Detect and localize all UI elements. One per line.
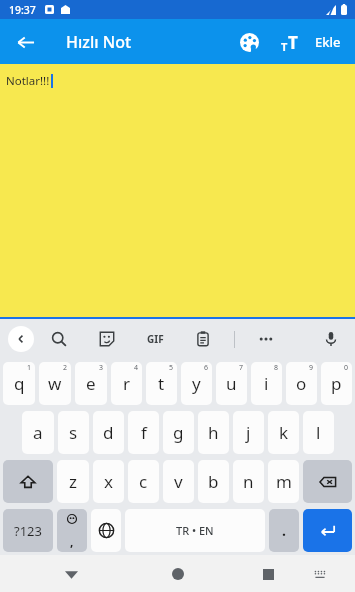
staticText: j — [246, 421, 251, 444]
button[interactable]: Home — [163, 559, 193, 589]
staticText: T — [281, 39, 288, 54]
staticText: T — [288, 31, 298, 54]
button[interactable]: z — [57, 460, 89, 503]
button[interactable]: Color palette — [232, 25, 266, 59]
staticText: 6 — [204, 363, 209, 373]
button[interactable]: y — [181, 362, 212, 405]
staticText: o — [296, 372, 307, 395]
button[interactable]: b — [198, 460, 229, 503]
button[interactable]: p — [321, 362, 352, 405]
button[interactable]: w — [39, 362, 71, 405]
button[interactable]: GIF — [142, 326, 168, 352]
staticText: . — [282, 521, 286, 540]
staticText: , — [70, 533, 74, 549]
button[interactable]: s — [58, 411, 89, 454]
staticText: n — [243, 470, 254, 493]
button[interactable]: f — [128, 411, 159, 454]
staticText: q — [14, 372, 25, 395]
button[interactable]: q — [3, 362, 35, 405]
staticText: 5 — [169, 363, 174, 373]
button[interactable]: Search — [46, 326, 72, 352]
button[interactable]: v — [163, 460, 194, 503]
button[interactable]: Clipboard — [190, 326, 216, 352]
staticText: p — [331, 372, 342, 395]
staticText: t — [158, 372, 165, 395]
staticText: 0 — [344, 363, 349, 373]
staticText: w — [48, 372, 62, 395]
button[interactable]: x — [93, 460, 124, 503]
staticText: z — [69, 470, 77, 493]
button[interactable]: h — [198, 411, 229, 454]
staticText: GIF — [147, 332, 164, 346]
button[interactable]: j — [233, 411, 264, 454]
button[interactable]: Expand toolbar — [8, 326, 34, 352]
staticText: i — [264, 372, 269, 395]
staticText: e — [86, 372, 96, 395]
button[interactable]: k — [268, 411, 299, 454]
button[interactable]: More options — [253, 326, 279, 352]
button[interactable]: Enter — [303, 509, 352, 552]
button[interactable]: Voice input — [317, 325, 345, 353]
staticText: g — [173, 421, 184, 444]
staticText: Hızlı Not — [66, 31, 132, 53]
staticText: a — [33, 421, 43, 444]
button[interactable]: e — [75, 362, 107, 405]
button[interactable]: Emoji and comma — [57, 509, 87, 552]
staticText: 19:37 — [9, 3, 36, 17]
button[interactable]: Change language — [91, 509, 121, 552]
button[interactable]: i — [251, 362, 282, 405]
staticText: Ekle — [315, 33, 341, 51]
staticText: TR • EN — [176, 523, 214, 538]
staticText: c — [139, 470, 148, 493]
staticText: m — [276, 470, 292, 493]
button[interactable]: m — [268, 460, 299, 503]
staticText: f — [141, 421, 147, 444]
staticText: u — [226, 372, 237, 395]
staticText: 1 — [27, 363, 32, 373]
staticText: 8 — [274, 363, 279, 373]
staticText: d — [103, 421, 114, 444]
staticText: l — [316, 421, 321, 444]
button[interactable]: Recent apps — [253, 559, 283, 589]
button[interactable]: Backspace — [303, 460, 352, 503]
staticText: 2 — [63, 363, 68, 373]
button[interactable]: u — [216, 362, 247, 405]
button[interactable]: Keyboard indicator — [307, 561, 333, 587]
staticText: s — [69, 421, 78, 444]
button[interactable]: Back — [8, 25, 42, 59]
button[interactable]: . — [269, 509, 299, 552]
staticText: r — [123, 372, 131, 395]
button[interactable]: d — [93, 411, 124, 454]
staticText: ?123 — [14, 522, 42, 540]
staticText: y — [192, 372, 201, 395]
button[interactable]: n — [233, 460, 264, 503]
button[interactable]: Hide keyboard — [56, 559, 86, 589]
button[interactable]: Stickers — [94, 326, 120, 352]
button[interactable]: r — [111, 362, 142, 405]
staticText: v — [174, 470, 183, 493]
staticText: Notlar!!! — [6, 73, 50, 89]
staticText: 4 — [134, 363, 139, 373]
button[interactable]: t — [146, 362, 177, 405]
button[interactable]: g — [163, 411, 194, 454]
button[interactable]: Shift — [3, 460, 53, 503]
staticText: b — [208, 470, 219, 493]
staticText: 7 — [239, 363, 244, 373]
staticText: 3 — [99, 363, 104, 373]
button[interactable]: o — [286, 362, 317, 405]
button[interactable]: l — [303, 411, 334, 454]
button[interactable]: a — [22, 411, 54, 454]
staticText: 9 — [309, 363, 314, 373]
staticText: k — [279, 421, 289, 444]
button[interactable]: c — [128, 460, 159, 503]
staticText: h — [208, 421, 219, 444]
button[interactable]: Ekle — [307, 25, 349, 59]
button[interactable]: TR • EN — [125, 509, 265, 552]
button[interactable]: ?123 — [3, 509, 53, 552]
button[interactable]: Text size — [272, 25, 306, 59]
staticText: x — [104, 470, 113, 493]
